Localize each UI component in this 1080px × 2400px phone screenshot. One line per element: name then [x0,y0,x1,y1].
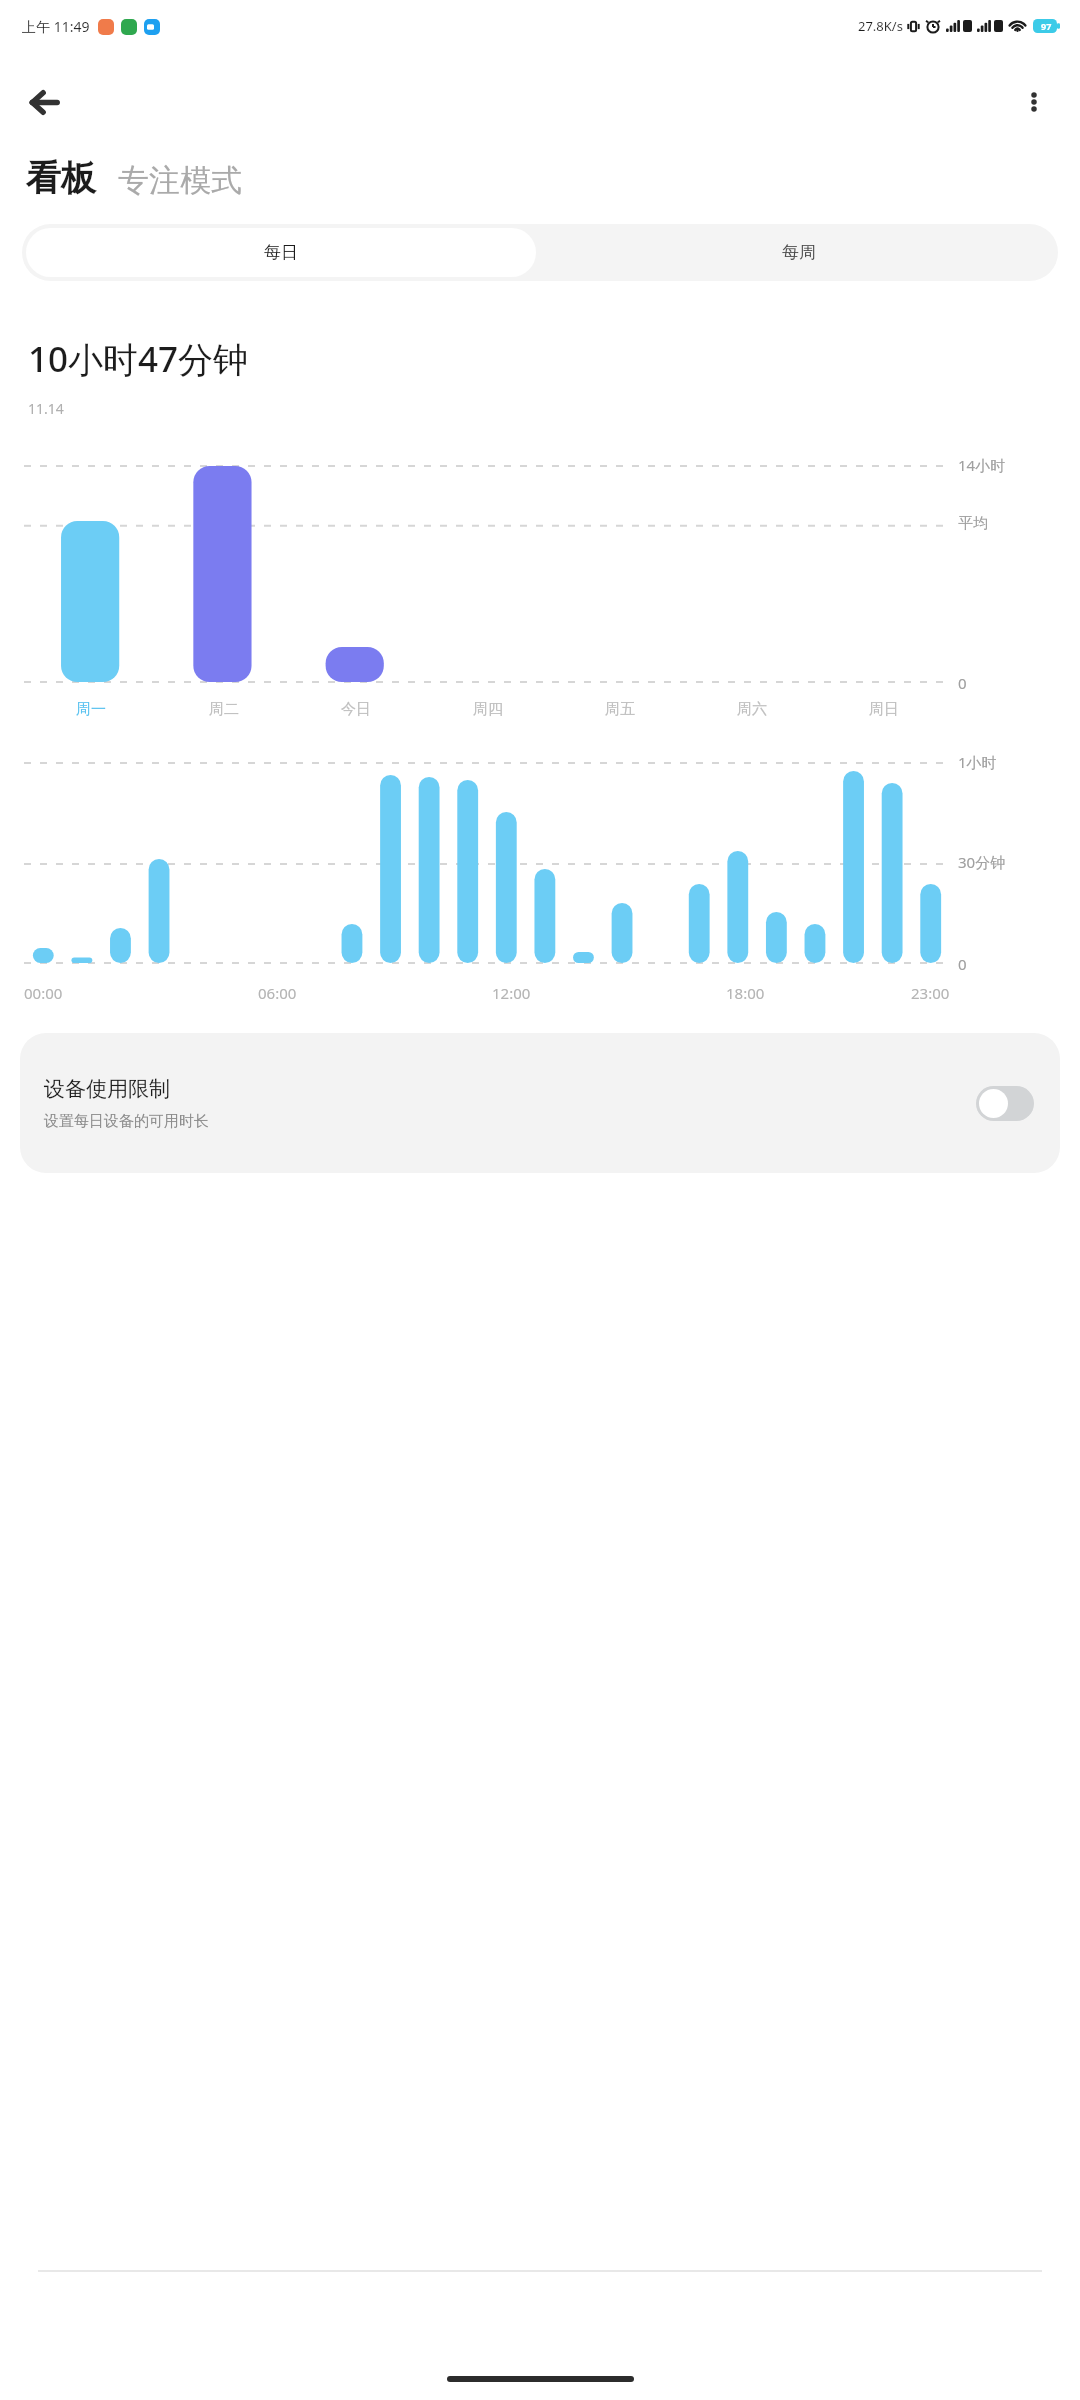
button[interactable]: 今日 [290,700,422,719]
button[interactable]: Back [14,72,74,132]
staticText: 周六 [737,700,767,719]
staticText: 30分钟 [958,852,1006,872]
staticText: 设备使用限制 [44,1076,170,1102]
button[interactable]: 周六 [686,700,818,719]
button[interactable]: 每周 [540,224,1058,281]
staticText: 看板 [26,156,96,200]
staticText: 12:00 [492,983,531,1003]
staticText: 10小时47分钟 [28,335,249,383]
staticText: 0 [958,673,967,693]
button[interactable]: 周一 [24,700,157,719]
staticText: 周二 [209,700,239,719]
staticText: 每日 [264,242,298,263]
staticText: 14小时 [958,455,1006,475]
staticText: 周五 [605,700,635,719]
button[interactable]: 周四 [422,700,554,719]
staticText: 平均 [958,514,988,533]
staticText: 23:00 [911,983,950,1003]
staticText: 周一 [76,700,106,719]
staticText: 周日 [869,700,899,719]
staticText: 设置每日设备的可用时长 [44,1112,209,1131]
button[interactable]: 周五 [554,700,686,719]
button[interactable]: More options [1004,72,1064,132]
staticText: 专注模式 [118,161,242,200]
button[interactable]: Toggle device usage limit [976,1086,1034,1121]
button[interactable]: 设备使用限制 [20,1033,1060,1173]
staticText: 97 [1041,20,1052,32]
staticText: 今日 [341,700,371,719]
staticText: 每周 [782,242,816,263]
button[interactable]: 每日 [26,228,536,277]
button[interactable]: 周二 [157,700,290,719]
button[interactable]: 周日 [818,700,950,719]
staticText: 06:00 [258,983,297,1003]
button[interactable]: 专注模式 [118,157,242,204]
staticText: 00:00 [24,983,63,1003]
button[interactable]: 看板 [26,152,96,204]
staticText: 周四 [473,700,503,719]
staticText: 11.14 [28,399,64,418]
staticText: 1小时 [958,752,997,772]
staticText: 27.8K/s [858,17,903,35]
staticText: 0 [958,954,967,974]
staticText: 18:00 [726,983,765,1003]
staticText: 上午 11:49 [22,17,90,36]
